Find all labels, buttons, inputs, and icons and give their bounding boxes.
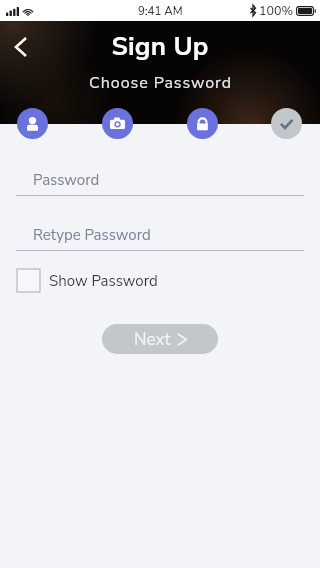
button[interactable]: Profile xyxy=(17,108,48,139)
button[interactable]: Password xyxy=(187,108,218,139)
staticText: Retype Password xyxy=(33,225,151,245)
staticText: Sign Up xyxy=(111,29,209,64)
button[interactable]: Next xyxy=(102,324,218,354)
button[interactable]: Back xyxy=(7,33,35,61)
button[interactable]: Show Password xyxy=(17,269,158,292)
button[interactable]: Photo xyxy=(102,108,133,139)
staticText: Show Password xyxy=(49,271,158,291)
button[interactable]: Done xyxy=(271,108,302,139)
staticText: Choose Password xyxy=(89,72,232,94)
staticText: Password xyxy=(33,170,100,190)
staticText: Next xyxy=(134,328,171,351)
staticText: 100% xyxy=(259,2,294,19)
staticText: 9:41 AM xyxy=(138,3,183,19)
